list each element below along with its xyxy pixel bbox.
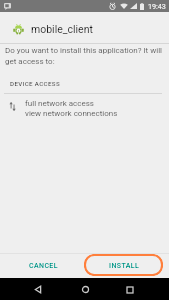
staticText: mobile_client [31, 23, 93, 35]
staticText: CANCEL [29, 262, 58, 270]
staticText: INSTALL [109, 262, 140, 270]
button[interactable]: CANCEL [8, 256, 78, 275]
staticText: DEVICE ACCESS [10, 80, 61, 87]
staticText: full network access [25, 99, 94, 108]
button[interactable]: Back [28, 279, 48, 300]
staticText: Do you want to install this application?… [5, 46, 163, 66]
button[interactable]: Home [75, 279, 95, 300]
button[interactable]: INSTALL [84, 254, 163, 276]
button[interactable]: Recents [120, 279, 140, 300]
staticText: view network connections [25, 109, 118, 118]
staticText: 19:43 [148, 2, 166, 10]
